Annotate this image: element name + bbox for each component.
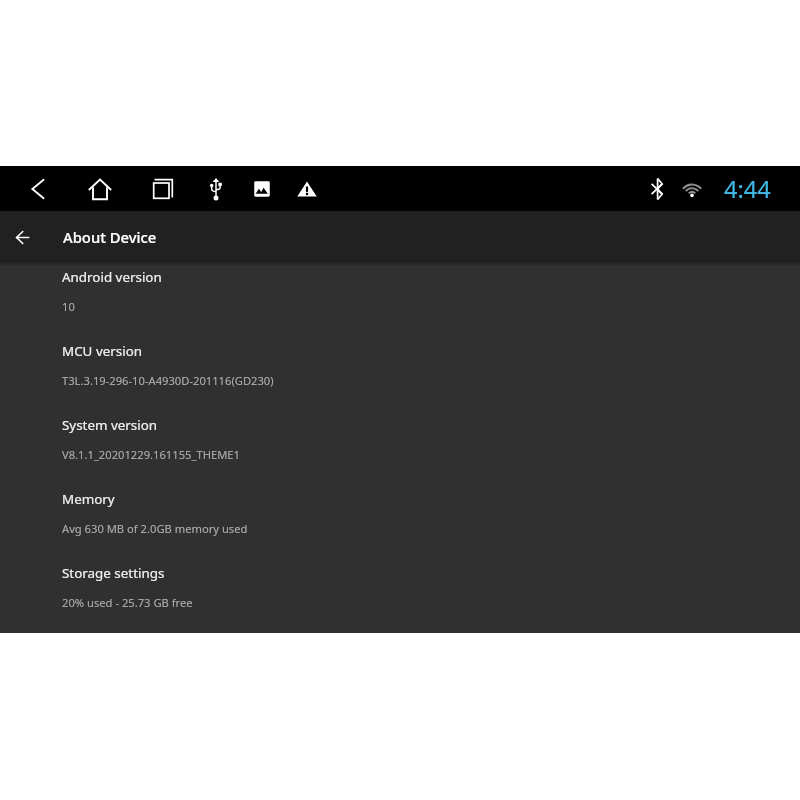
staticText: System version bbox=[62, 416, 158, 434]
button[interactable]: 4:44 bbox=[716, 166, 778, 211]
staticText: T3L.3.19-296-10-A4930D-201116(GD230) bbox=[62, 373, 274, 388]
staticText: Storage settings bbox=[62, 564, 165, 582]
staticText: V8.1.1_20201229.161155_THEME1 bbox=[62, 447, 240, 462]
button[interactable]: Storage settings bbox=[0, 557, 800, 631]
button[interactable]: Bluetooth bbox=[634, 166, 680, 211]
button[interactable]: USB connected bbox=[193, 166, 239, 211]
staticText: MCU version bbox=[62, 342, 143, 360]
button[interactable]: Recent apps bbox=[140, 166, 186, 211]
button[interactable]: System version bbox=[0, 409, 800, 483]
staticText: Memory bbox=[62, 490, 115, 508]
button[interactable]: Back bbox=[15, 166, 61, 211]
button[interactable]: Wi-Fi bbox=[669, 166, 715, 211]
staticText: 10 bbox=[62, 299, 75, 314]
staticText: 4:44 bbox=[724, 173, 771, 205]
button[interactable]: Navigate up bbox=[0, 211, 45, 261]
button[interactable]: Memory bbox=[0, 483, 800, 557]
button[interactable]: Home bbox=[77, 166, 123, 211]
button[interactable]: Warning bbox=[284, 166, 330, 211]
staticText: Android version bbox=[62, 268, 162, 286]
staticText: About Device bbox=[63, 227, 157, 247]
button[interactable]: Gallery bbox=[239, 166, 285, 211]
button[interactable]: MCU version bbox=[0, 335, 800, 409]
button[interactable]: Android version bbox=[0, 261, 800, 335]
staticText: Avg 630 MB of 2.0GB memory used bbox=[62, 521, 248, 536]
staticText: 20% used - 25.73 GB free bbox=[62, 595, 193, 610]
